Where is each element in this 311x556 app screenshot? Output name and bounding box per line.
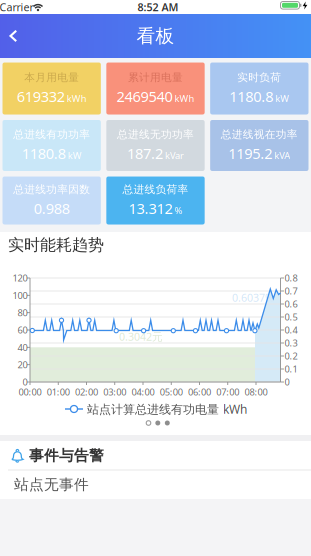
staticText: 总进线无功功率 <box>117 128 194 141</box>
staticText: kVar <box>165 149 184 162</box>
staticText: 0.988 <box>34 199 70 218</box>
staticText: 40 <box>17 341 27 353</box>
staticText: 04:00 <box>131 386 154 398</box>
staticText: 0.6 <box>284 298 297 310</box>
staticText: kVA <box>274 149 290 162</box>
staticText: % <box>174 204 182 217</box>
staticText: 80 <box>17 306 27 319</box>
staticText: 00:00 <box>18 386 41 398</box>
staticText: 0 <box>22 376 27 388</box>
staticText: 06:00 <box>188 386 211 398</box>
button[interactable]: 站点无事件 <box>0 470 311 499</box>
button[interactable]: 站点计算总进线有功电量 kWh <box>65 401 247 417</box>
staticText: 0 <box>284 376 289 388</box>
staticText: 05:00 <box>160 386 183 398</box>
staticText: 13.312 <box>128 199 172 218</box>
staticText: kWh <box>174 92 194 105</box>
button[interactable]: 总进线功率因数 <box>2 176 101 224</box>
button[interactable]: 实时负荷 <box>210 62 308 114</box>
staticText: 0.2 <box>284 350 297 362</box>
staticText: 60 <box>17 324 27 336</box>
button[interactable]: Back <box>1 22 26 50</box>
staticText: 0.1 <box>284 363 297 375</box>
button[interactable]: 事件与告警 <box>0 441 311 470</box>
button[interactable]: 总进线视在功率 <box>210 120 308 171</box>
staticText: 事件与告警 <box>29 446 104 464</box>
staticText: 0.7 <box>284 285 297 297</box>
staticText: 01:00 <box>47 386 70 398</box>
staticText: 0.3 <box>284 337 297 349</box>
staticText: 总进线负荷率 <box>122 183 188 196</box>
staticText: kWh <box>67 92 87 105</box>
staticText: 看板 <box>136 24 174 47</box>
staticText: 0.6037% <box>232 290 274 305</box>
staticText: 实时负荷 <box>237 71 281 84</box>
button[interactable]: 总进线无功功率 <box>106 120 205 171</box>
staticText: 站点无事件 <box>14 475 89 493</box>
staticText: 100 <box>12 289 27 301</box>
staticText: 2469540 <box>116 87 172 106</box>
staticText: kW <box>275 92 289 105</box>
staticText: 本月用电量 <box>24 71 79 84</box>
staticText: 实时能耗趋势 <box>8 235 104 255</box>
staticText: 02:00 <box>75 386 98 398</box>
button[interactable]: 总进线有功功率 <box>2 120 101 171</box>
staticText: 08:00 <box>244 386 267 398</box>
button[interactable]: 本月用电量 <box>2 62 101 114</box>
staticText: 07:00 <box>216 386 239 398</box>
staticText: 120 <box>12 272 27 284</box>
button[interactable]: 累计用电量 <box>106 62 205 114</box>
staticText: 1180.8 <box>229 87 273 106</box>
staticText: 619332 <box>17 87 65 106</box>
staticText: 累计用电量 <box>128 71 183 84</box>
staticText: 0.8 <box>284 272 297 284</box>
staticText: 03:00 <box>103 386 126 398</box>
staticText: 总进线有功功率 <box>13 128 90 141</box>
staticText: 总进线视在功率 <box>221 128 298 141</box>
staticText: 1195.2 <box>228 144 272 163</box>
staticText: Carrier <box>0 0 33 14</box>
staticText: 8:52 AM <box>137 0 178 14</box>
staticText: 1180.8 <box>22 144 66 163</box>
staticText: 20 <box>17 358 27 371</box>
staticText: 0.4 <box>284 324 297 336</box>
staticText: 187.2 <box>127 144 163 163</box>
staticText: 站点计算总进线有功电量 kWh <box>87 401 247 417</box>
staticText: 总进线功率因数 <box>13 183 90 196</box>
staticText: 0.3042元 <box>119 329 163 344</box>
staticText: kW <box>68 149 82 162</box>
button[interactable]: 总进线负荷率 <box>106 176 205 224</box>
staticText: 0.5 <box>284 311 297 323</box>
